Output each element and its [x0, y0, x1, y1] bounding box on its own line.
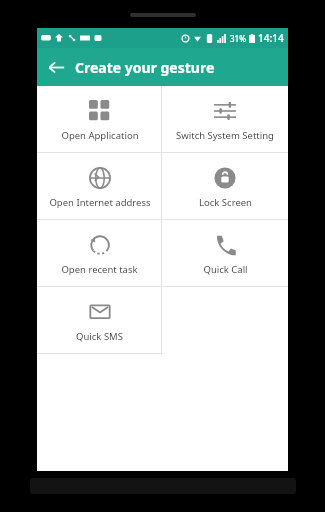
staticText: Quick Call	[203, 263, 248, 276]
button[interactable]: Open recent task	[37, 220, 162, 287]
staticText: 31%	[230, 33, 246, 44]
staticText: 14:14	[258, 31, 284, 45]
button[interactable]: Quick Call	[162, 220, 288, 287]
staticText: Create your gesture	[75, 58, 215, 77]
button[interactable]: Open Internet address	[37, 153, 162, 220]
staticText: Switch System Setting	[176, 129, 274, 142]
staticText: Quick SMS	[76, 330, 123, 343]
button[interactable]: Quick SMS	[37, 287, 162, 354]
staticText: Lock Screen	[199, 196, 252, 209]
button[interactable]: Back	[37, 48, 75, 86]
staticText: Open Internet address	[49, 196, 151, 209]
button[interactable]: Lock Screen	[162, 153, 288, 220]
button[interactable]: Open Application	[37, 86, 162, 153]
staticText: Open recent task	[61, 263, 138, 276]
staticText: Open Application	[61, 129, 139, 142]
button[interactable]: Switch System Setting	[162, 86, 288, 153]
